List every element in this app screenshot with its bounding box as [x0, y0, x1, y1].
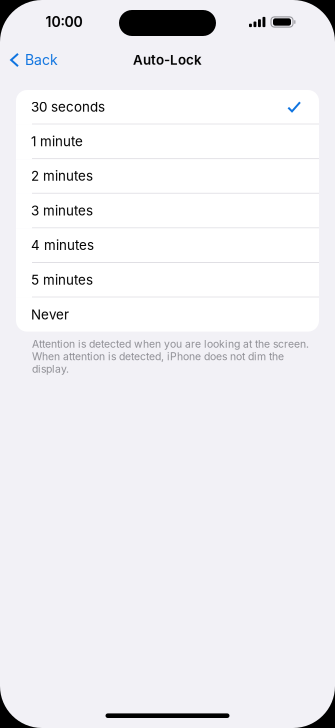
button[interactable]: 3 minutes [16, 194, 319, 228]
button[interactable]: 4 minutes [16, 228, 319, 263]
button[interactable]: Never [16, 298, 319, 332]
staticText: Back [25, 51, 58, 68]
button[interactable]: Back [0, 46, 58, 73]
staticText: 2 minutes [31, 168, 93, 184]
staticText: 4 minutes [31, 237, 94, 253]
staticText: Never [31, 306, 69, 323]
button[interactable]: 2 minutes [16, 159, 319, 194]
staticText: 3 minutes [31, 202, 93, 219]
staticText: Auto-Lock [133, 52, 202, 68]
button[interactable]: 30 seconds [16, 90, 319, 125]
button[interactable]: 1 minute [16, 125, 319, 159]
staticText: 1 minute [31, 133, 83, 149]
staticText: 10:00 [45, 13, 82, 30]
staticText: Attention is detected when you are looki… [32, 338, 309, 375]
staticText: 5 minutes [31, 272, 93, 288]
staticText: 30 seconds [31, 99, 105, 115]
button[interactable]: 5 minutes [16, 263, 319, 298]
